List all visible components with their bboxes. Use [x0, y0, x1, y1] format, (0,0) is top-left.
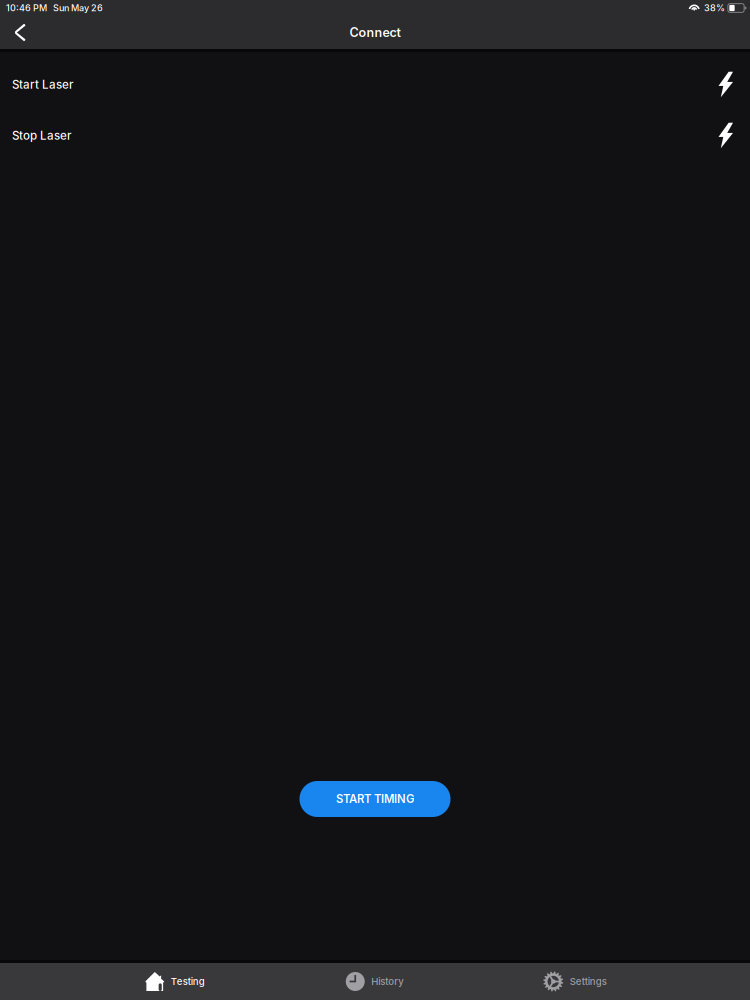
button[interactable]: Start Laser	[0, 59, 750, 110]
button[interactable]: Settings	[475, 963, 675, 1000]
staticText: Connect	[349, 25, 400, 40]
staticText: Settings	[570, 976, 607, 987]
staticText: Start Laser	[12, 77, 73, 91]
staticText: Testing	[171, 976, 205, 987]
staticText: START TIMING	[336, 792, 414, 806]
staticText: Sun May 26	[53, 2, 103, 13]
button[interactable]: START TIMING	[299, 781, 450, 817]
button[interactable]: Back	[0, 16, 40, 49]
staticText: Stop Laser	[12, 128, 71, 142]
button[interactable]: History	[275, 963, 475, 1000]
staticText: 10:46 PM	[6, 2, 47, 13]
staticText: 38%	[704, 2, 725, 13]
staticText: History	[371, 976, 404, 987]
button[interactable]: Testing	[75, 963, 275, 1000]
button[interactable]: Stop Laser	[0, 110, 750, 161]
